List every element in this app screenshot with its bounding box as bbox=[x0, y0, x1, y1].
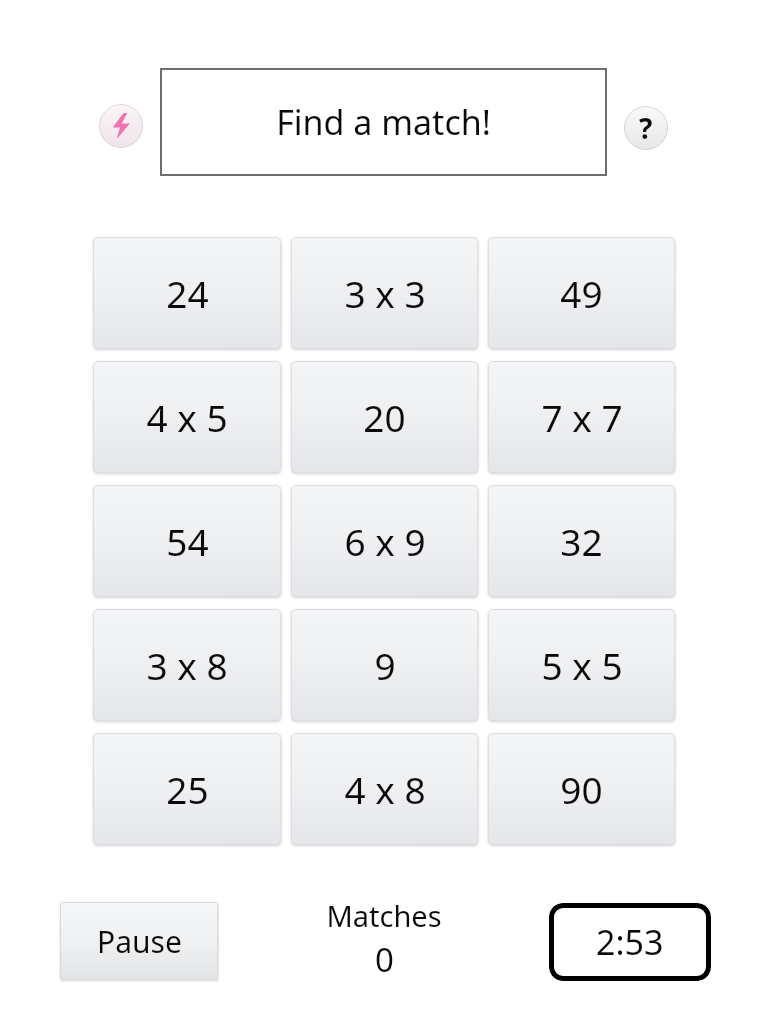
button[interactable]: Pause bbox=[60, 902, 218, 980]
staticText: 3 x 8 bbox=[146, 640, 228, 690]
staticText: 2:53 bbox=[596, 919, 664, 965]
staticText: 49 bbox=[560, 268, 603, 318]
staticText: 0 bbox=[375, 937, 394, 982]
staticText: Find a match! bbox=[276, 99, 491, 145]
staticText: 6 x 9 bbox=[344, 516, 426, 566]
staticText: ? bbox=[639, 109, 653, 147]
button[interactable]: 49 bbox=[488, 237, 675, 349]
button[interactable]: 25 bbox=[93, 733, 281, 845]
button[interactable]: Help bbox=[624, 106, 668, 150]
button[interactable]: 90 bbox=[488, 733, 675, 845]
staticText: 4 x 5 bbox=[146, 392, 228, 442]
button[interactable]: 20 bbox=[291, 361, 478, 473]
button[interactable]: 4 x 8 bbox=[291, 733, 478, 845]
button[interactable]: 9 bbox=[291, 609, 478, 721]
button[interactable]: 54 bbox=[93, 485, 281, 597]
button[interactable]: 3 x 8 bbox=[93, 609, 281, 721]
staticText: 24 bbox=[166, 268, 209, 318]
staticText: 25 bbox=[166, 764, 209, 814]
button[interactable]: 2:53 bbox=[549, 903, 711, 981]
button[interactable]: 4 x 5 bbox=[93, 361, 281, 473]
button[interactable]: Power up bbox=[99, 104, 143, 148]
staticText: 32 bbox=[560, 516, 603, 566]
staticText: 90 bbox=[560, 764, 603, 814]
staticText: 7 x 7 bbox=[541, 392, 623, 442]
button[interactable]: 32 bbox=[488, 485, 675, 597]
button[interactable]: 5 x 5 bbox=[488, 609, 675, 721]
staticText: Matches bbox=[326, 896, 442, 935]
button[interactable]: 7 x 7 bbox=[488, 361, 675, 473]
staticText: 4 x 8 bbox=[344, 764, 426, 814]
staticText: 54 bbox=[166, 516, 209, 566]
button[interactable]: 24 bbox=[93, 237, 281, 349]
staticText: 9 bbox=[374, 640, 396, 690]
staticText: Pause bbox=[97, 921, 182, 962]
button[interactable]: 3 x 3 bbox=[291, 237, 478, 349]
staticText: 20 bbox=[363, 392, 406, 442]
staticText: 3 x 3 bbox=[344, 268, 426, 318]
staticText: 5 x 5 bbox=[541, 640, 623, 690]
button[interactable]: 6 x 9 bbox=[291, 485, 478, 597]
